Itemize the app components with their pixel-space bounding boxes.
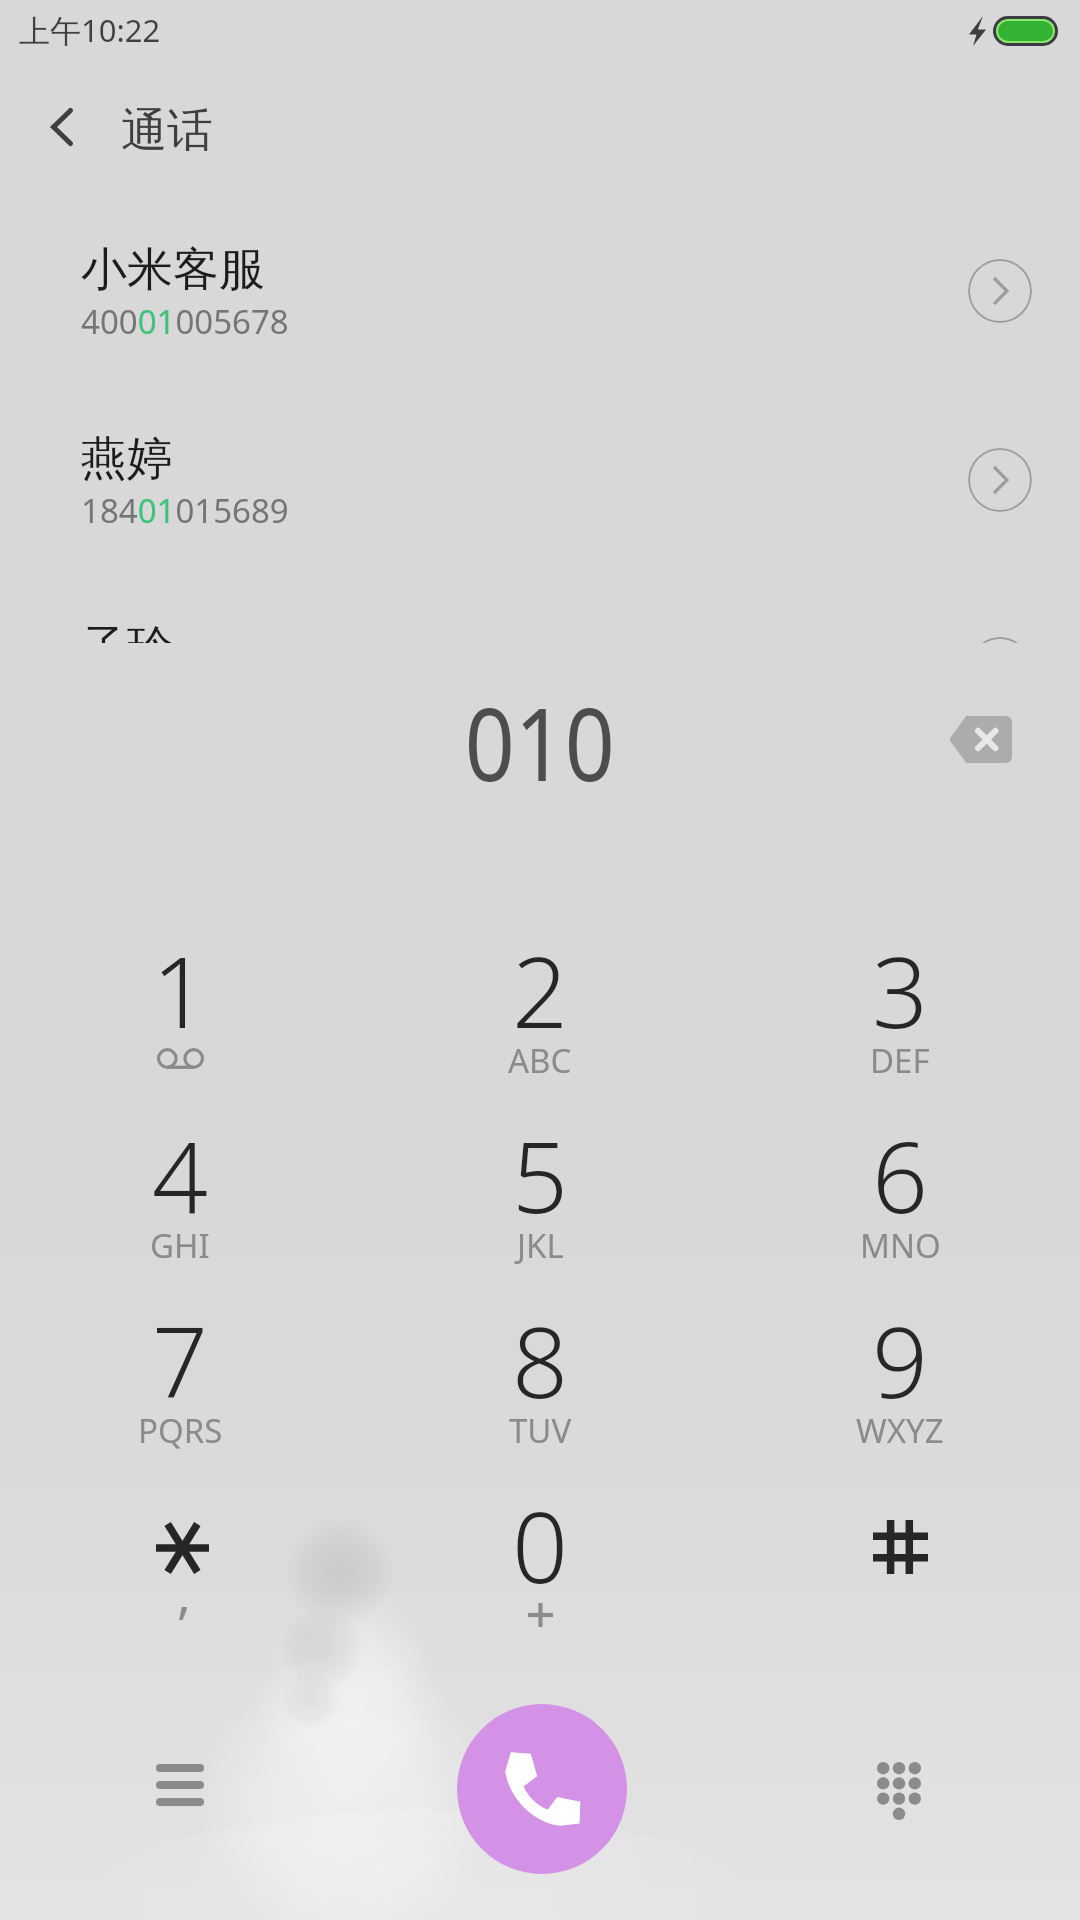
button[interactable]: 7 bbox=[0, 1263, 360, 1448]
button[interactable]: 4 bbox=[0, 1078, 360, 1263]
button[interactable]: 燕婷 bbox=[0, 394, 1080, 583]
staticText: 1 bbox=[152, 923, 208, 1056]
button[interactable]: 3 bbox=[720, 893, 1080, 1078]
staticText: 4 bbox=[152, 1108, 208, 1241]
button[interactable]: Dialpad bbox=[845, 1737, 953, 1845]
button[interactable] bbox=[720, 1448, 1080, 1633]
button[interactable]: Call bbox=[457, 1704, 627, 1874]
staticText: PQRS bbox=[138, 1408, 223, 1453]
staticText: 上午10:22 bbox=[19, 9, 161, 51]
staticText: MNO bbox=[860, 1223, 941, 1268]
button[interactable]: 5 bbox=[360, 1078, 720, 1263]
button[interactable]: Contact details bbox=[968, 637, 1032, 643]
staticText: 5 bbox=[512, 1108, 568, 1241]
staticText: 0 bbox=[512, 1478, 568, 1611]
staticText: TUV bbox=[509, 1408, 572, 1453]
button[interactable]: Back bbox=[8, 59, 116, 194]
button[interactable]: 0 bbox=[360, 1448, 720, 1633]
button[interactable]: Contact details bbox=[968, 448, 1032, 512]
staticText: JKL bbox=[517, 1223, 564, 1268]
staticText: 40001005678 bbox=[81, 299, 289, 344]
button[interactable]: 小米客服 bbox=[0, 205, 1080, 394]
staticText: , bbox=[177, 1557, 191, 1628]
staticText: 9 bbox=[872, 1293, 928, 1426]
staticText: 小米客服 bbox=[81, 241, 265, 299]
button[interactable]: 子玲 bbox=[0, 583, 1080, 643]
button[interactable]: 2 bbox=[360, 893, 720, 1078]
button[interactable]: 9 bbox=[720, 1263, 1080, 1448]
staticText: 2 bbox=[512, 923, 568, 1056]
staticText: ABC bbox=[508, 1038, 572, 1083]
button[interactable]: Contact details bbox=[968, 259, 1032, 323]
button[interactable]: 6 bbox=[720, 1078, 1080, 1263]
staticText: WXYZ bbox=[856, 1408, 944, 1453]
button[interactable]: 1 bbox=[0, 893, 360, 1078]
button[interactable]: , bbox=[0, 1448, 360, 1633]
staticText: GHI bbox=[150, 1223, 210, 1268]
button[interactable]: Backspace bbox=[925, 694, 1035, 784]
staticText: 18401015689 bbox=[81, 488, 289, 533]
staticText: 燕婷 bbox=[81, 430, 173, 488]
staticText: 通话 bbox=[121, 102, 213, 160]
staticText: DEF bbox=[870, 1038, 930, 1083]
staticText: 子玲 bbox=[81, 619, 173, 643]
staticText: 7 bbox=[152, 1293, 208, 1426]
button[interactable]: Menu bbox=[126, 1731, 234, 1839]
staticText: 8 bbox=[512, 1293, 568, 1426]
button[interactable]: 8 bbox=[360, 1263, 720, 1448]
staticText: 6 bbox=[872, 1108, 928, 1241]
staticText: 010 bbox=[465, 674, 615, 784]
staticText: 3 bbox=[872, 923, 928, 1056]
